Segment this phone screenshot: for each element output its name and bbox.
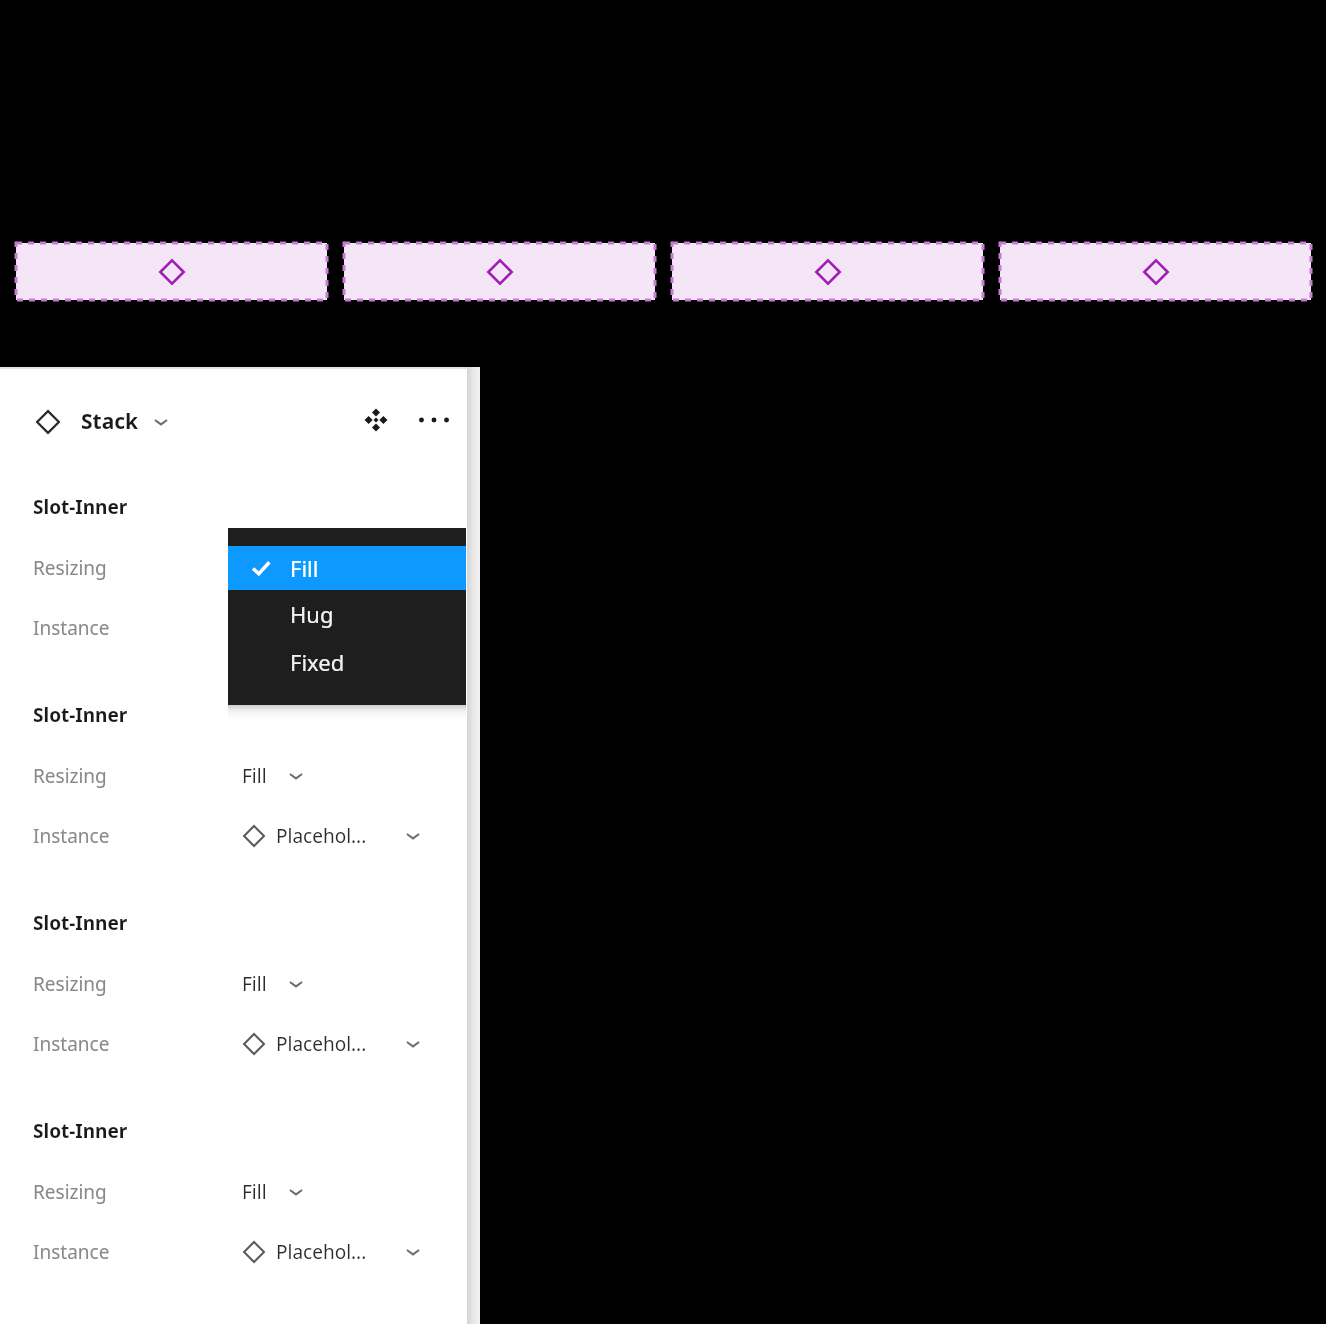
button[interactable]: Placehol... bbox=[243, 1031, 367, 1057]
staticText: Instance bbox=[33, 1239, 110, 1265]
button[interactable]: Fill bbox=[242, 763, 267, 789]
staticText: Resizing bbox=[33, 555, 107, 581]
staticText: Fill bbox=[242, 971, 267, 997]
staticText: Placehol... bbox=[276, 1031, 367, 1057]
staticText: Placehol... bbox=[276, 823, 367, 849]
button[interactable]: Hug bbox=[228, 590, 466, 638]
staticText: Fixed bbox=[290, 647, 345, 677]
button[interactable]: Placehol... bbox=[243, 1239, 367, 1265]
button[interactable] bbox=[1000, 243, 1311, 300]
button[interactable]: More options bbox=[414, 400, 454, 440]
staticText: Stack bbox=[81, 407, 139, 436]
staticText: Hug bbox=[290, 599, 334, 629]
button[interactable]: Stack bbox=[36, 407, 169, 436]
button[interactable]: Fill bbox=[242, 1179, 267, 1205]
button[interactable]: Fill bbox=[228, 546, 466, 590]
button[interactable]: Distribute bbox=[356, 400, 396, 440]
button[interactable]: Fixed bbox=[228, 638, 466, 686]
staticText: Resizing bbox=[33, 763, 107, 789]
button[interactable] bbox=[16, 243, 327, 300]
staticText: Instance bbox=[33, 823, 110, 849]
staticText: Placehol... bbox=[276, 1239, 367, 1265]
staticText: Slot-Inner bbox=[33, 702, 128, 728]
button[interactable]: Fill bbox=[242, 971, 267, 997]
staticText: Fill bbox=[290, 553, 319, 583]
staticText: Slot-Inner bbox=[33, 494, 128, 520]
staticText: Resizing bbox=[33, 1179, 107, 1205]
staticText: Fill bbox=[242, 1179, 267, 1205]
staticText: Instance bbox=[33, 615, 110, 641]
staticText: Slot-Inner bbox=[33, 910, 128, 936]
staticText: Resizing bbox=[33, 971, 107, 997]
staticText: Slot-Inner bbox=[33, 1118, 128, 1144]
staticText: Fill bbox=[242, 763, 267, 789]
button[interactable] bbox=[344, 243, 655, 300]
button[interactable]: Placehol... bbox=[243, 823, 367, 849]
staticText: Instance bbox=[33, 1031, 110, 1057]
button[interactable] bbox=[672, 243, 983, 300]
